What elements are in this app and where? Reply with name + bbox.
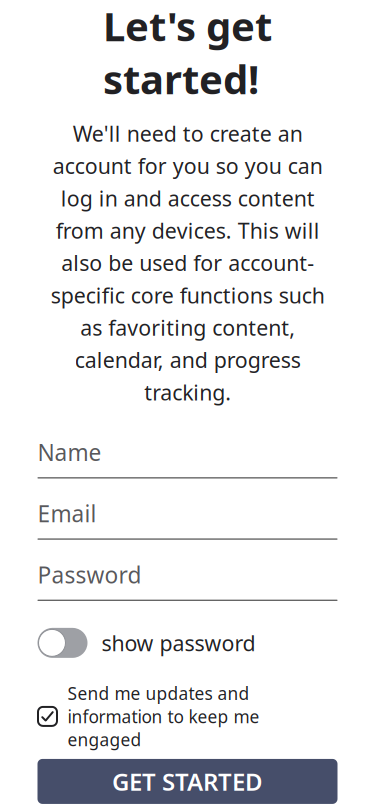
staticText: Name: [37, 437, 101, 467]
button[interactable]: Send me updates and information to keep …: [37, 682, 259, 751]
staticText: Send me updates and information to keep …: [67, 682, 259, 751]
staticText: Let's get started!: [103, 0, 272, 105]
staticText: Email: [37, 498, 96, 528]
staticText: Password: [37, 560, 141, 590]
button[interactable]: GET STARTED: [37, 759, 337, 804]
button[interactable]: show password: [37, 628, 255, 658]
staticText: GET STARTED: [112, 765, 263, 797]
staticText: show password: [101, 629, 255, 657]
staticText: We'll need to create an account for you …: [50, 119, 324, 406]
